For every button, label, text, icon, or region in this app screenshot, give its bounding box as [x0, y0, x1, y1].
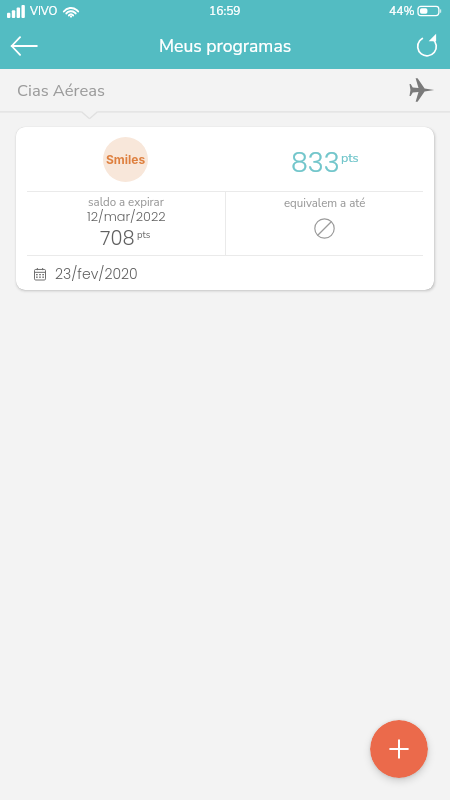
staticText: 44% [389, 3, 415, 19]
staticText: Smiles [106, 152, 146, 167]
button[interactable]: Add [370, 720, 428, 778]
staticText: 708 [100, 225, 135, 252]
staticText: 16:59 [209, 3, 241, 19]
staticText: saldo a expirar [88, 194, 164, 210]
staticText: 833 [291, 144, 340, 182]
staticText: Meus programas [159, 34, 292, 58]
staticText: 12/mar/2022 [87, 208, 166, 226]
staticText: Cias Aéreas [17, 79, 105, 102]
staticText: VIVO [30, 3, 58, 19]
other: Airline filter [407, 75, 437, 105]
button[interactable]: Back [0, 22, 47, 69]
staticText: equivalem a até [284, 195, 366, 211]
button[interactable]: Cias Aéreas [0, 69, 450, 111]
staticText: 23/fev/2020 [55, 264, 138, 284]
staticText: pts [341, 149, 359, 166]
staticText: pts [137, 228, 151, 241]
button[interactable]: Smiles [16, 127, 434, 290]
button[interactable]: Refresh [403, 22, 450, 69]
